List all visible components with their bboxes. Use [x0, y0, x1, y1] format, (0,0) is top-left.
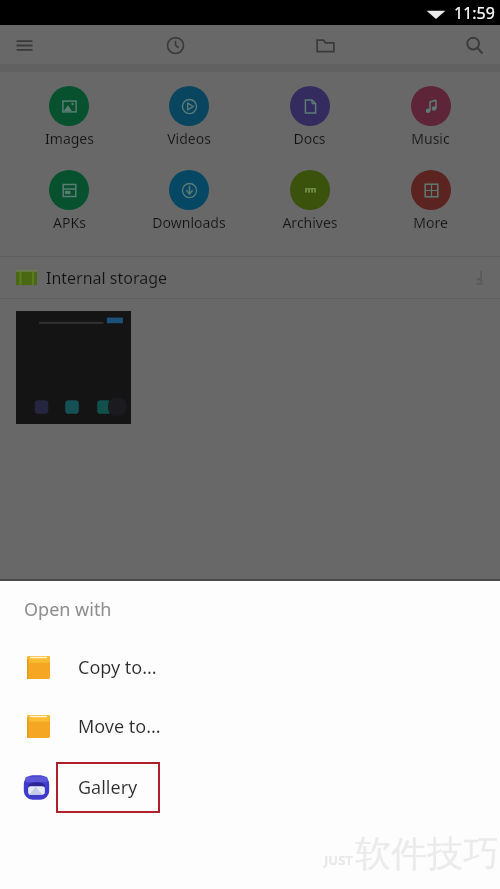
button[interactable]: Search	[456, 27, 492, 63]
staticText: Videos	[167, 129, 211, 148]
staticText: Downloads	[152, 213, 226, 232]
staticText: Music	[411, 129, 450, 148]
staticText: More	[413, 213, 448, 232]
button[interactable]: Docs	[249, 86, 370, 148]
staticText: 软件技巧	[355, 831, 499, 876]
staticText: Archives	[282, 213, 338, 232]
button[interactable]: Internal storage	[0, 257, 500, 298]
button[interactable]: Downloads	[129, 170, 249, 232]
staticText: Open with	[24, 597, 112, 622]
staticText: Copy to...	[78, 655, 157, 680]
button[interactable]: Screenshot thumbnail	[16, 311, 131, 424]
staticText: Docs	[293, 129, 326, 148]
staticText: APKs	[53, 213, 86, 232]
button[interactable]: APKs	[9, 170, 129, 232]
button[interactable]: Music	[370, 86, 491, 148]
button[interactable]: Menu	[6, 27, 42, 63]
button[interactable]: Archives	[249, 170, 370, 232]
button[interactable]: Copy to...	[0, 638, 500, 696]
button[interactable]: More	[370, 170, 491, 232]
button[interactable]: Recent files	[157, 27, 193, 63]
staticText: Gallery	[78, 775, 138, 800]
staticText: JUST	[324, 851, 353, 869]
staticText: Images	[45, 129, 94, 148]
staticText: Internal storage	[46, 267, 168, 289]
button[interactable]: Videos	[129, 86, 249, 148]
button[interactable]: Move to...	[0, 697, 500, 755]
button[interactable]: Gallery	[0, 758, 500, 816]
staticText: 11:59	[454, 2, 495, 24]
button[interactable]: Folders	[307, 27, 343, 63]
staticText: Move to...	[78, 714, 161, 739]
button[interactable]: Images	[9, 86, 129, 148]
